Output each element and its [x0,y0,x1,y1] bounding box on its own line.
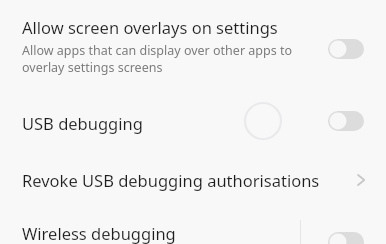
button[interactable]: USB debugging toggle [328,111,364,131]
staticText: USB debugging [22,112,143,134]
staticText: Allow apps that can display over other a… [22,42,292,76]
staticText: Wireless debugging [22,222,176,244]
staticText: Allow screen overlays on settings [22,16,278,38]
button[interactable]: Revoke USB debugging authorisations [0,155,386,205]
button[interactable]: USB debugging [0,98,386,148]
button[interactable]: Allow screen overlays on settings [0,8,386,90]
button[interactable]: Allow screen overlays on settings toggle [328,39,364,59]
button[interactable]: Wireless debugging toggle [328,232,364,244]
staticText: Revoke USB debugging authorisations [22,169,320,191]
button[interactable]: Wireless debugging [0,208,386,244]
